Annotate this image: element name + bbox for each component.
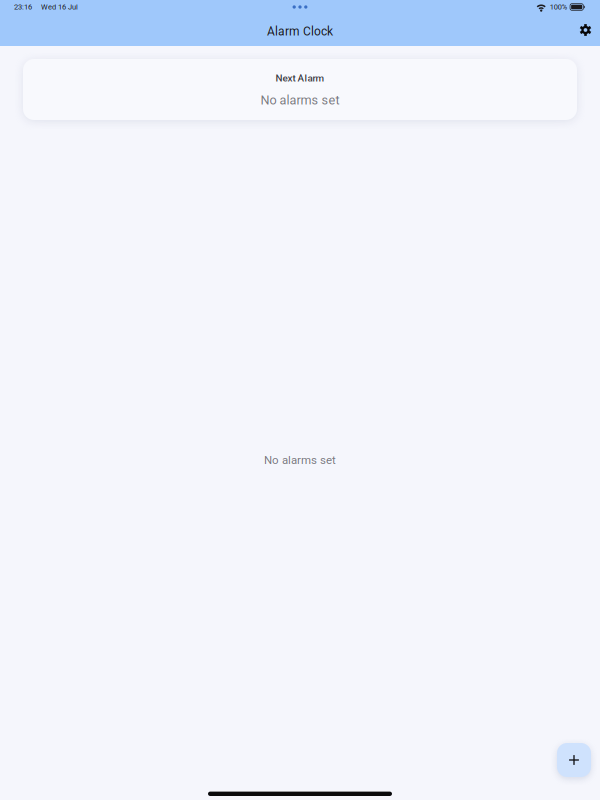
button[interactable]: Add alarm <box>557 743 591 777</box>
staticText: Next Alarm <box>275 72 324 84</box>
staticText: 100% <box>550 3 567 11</box>
staticText: 23:16 <box>14 3 32 11</box>
staticText: Wed 16 Jul <box>41 3 78 11</box>
button[interactable]: Settings <box>571 14 600 46</box>
staticText: No alarms set <box>260 93 339 108</box>
staticText: No alarms set <box>264 453 336 467</box>
staticText: Alarm Clock <box>267 24 333 39</box>
